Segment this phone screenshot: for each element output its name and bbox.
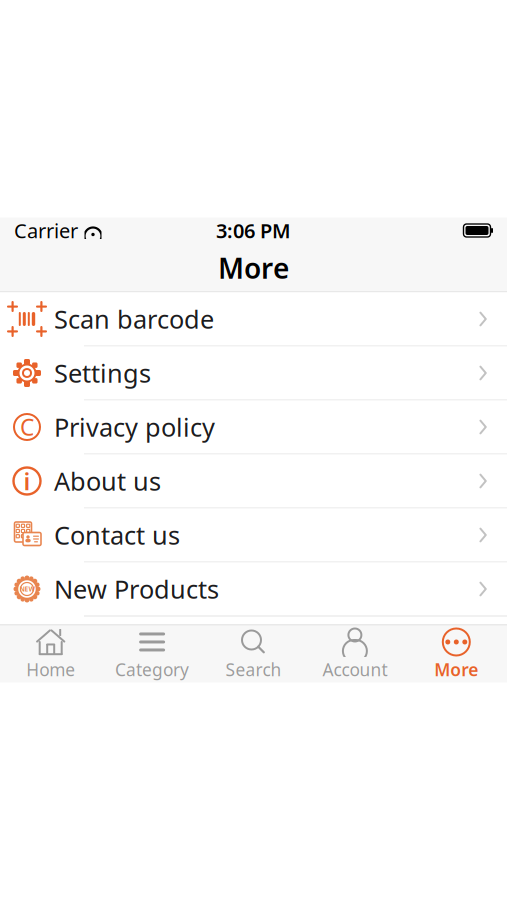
button[interactable]: NEW <box>0 562 507 616</box>
button[interactable]: Category <box>101 625 203 682</box>
staticText: 3:06 PM <box>216 217 291 244</box>
button[interactable]: Account <box>304 625 406 682</box>
button[interactable]: More <box>406 625 507 682</box>
button[interactable]: C <box>0 400 507 454</box>
button[interactable]: Scan barcode <box>0 292 507 346</box>
staticText: More <box>434 658 478 681</box>
staticText: Privacy policy <box>54 410 215 444</box>
staticText: NEW <box>19 585 34 593</box>
staticText: Home <box>26 658 75 681</box>
button[interactable]: Search <box>203 625 304 682</box>
staticText: Scan barcode <box>54 302 214 336</box>
staticText: Search <box>225 658 281 681</box>
button[interactable]: i <box>0 454 507 508</box>
staticText: Settings <box>54 356 151 390</box>
staticText: Carrier <box>14 217 78 244</box>
staticText: New Products <box>54 572 219 606</box>
staticText: C <box>20 412 34 442</box>
button[interactable]: Settings <box>0 346 507 400</box>
staticText: More <box>218 249 289 287</box>
staticText: About us <box>54 464 161 498</box>
button[interactable]: Contact us <box>0 508 507 562</box>
staticText: i <box>23 465 30 497</box>
staticText: Account <box>322 658 387 681</box>
staticText: Contact us <box>54 518 180 552</box>
button[interactable]: Home <box>0 625 101 682</box>
staticText: Category <box>115 658 189 681</box>
